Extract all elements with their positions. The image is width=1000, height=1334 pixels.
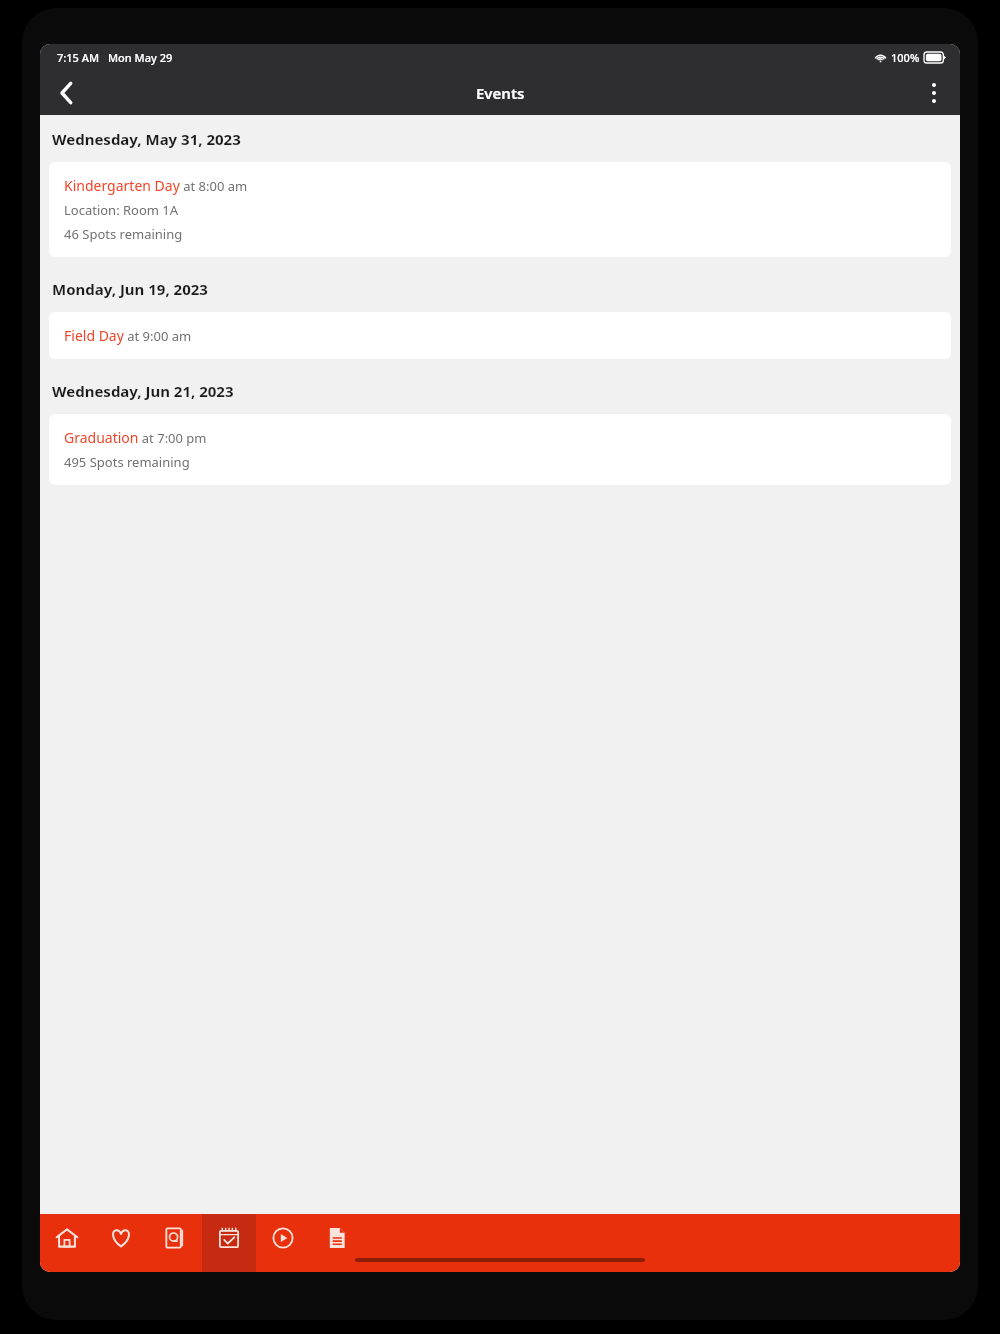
staticText: Monday, Jun 19, 2023 xyxy=(52,279,208,299)
button[interactable]: Events xyxy=(202,1214,256,1272)
staticText: Events xyxy=(476,83,525,103)
staticText: 100% xyxy=(891,50,920,65)
button[interactable]: Graduation at 7:00 pm xyxy=(49,414,951,485)
staticText: Mon May 29 xyxy=(108,50,173,65)
staticText: Kindergarten Day at 8:00 am xyxy=(64,176,248,195)
button[interactable]: Directory xyxy=(148,1214,202,1272)
staticText: Field Day at 9:00 am xyxy=(64,326,192,345)
button[interactable]: Field Day at 9:00 am xyxy=(49,312,951,359)
staticText: Wednesday, Jun 21, 2023 xyxy=(52,381,234,401)
button[interactable]: Back xyxy=(40,70,92,115)
staticText: 495 Spots remaining xyxy=(64,453,190,471)
staticText: Graduation at 7:00 pm xyxy=(64,428,207,447)
staticText: Location: Room 1A xyxy=(64,201,179,219)
button[interactable]: Media xyxy=(256,1214,310,1272)
staticText: 46 Spots remaining xyxy=(64,225,183,243)
button[interactable]: More options xyxy=(908,70,960,115)
staticText: Wednesday, May 31, 2023 xyxy=(52,129,241,149)
button[interactable]: Kindergarten Day at 8:00 am xyxy=(49,162,951,257)
button[interactable]: Favorites xyxy=(94,1214,148,1272)
button[interactable]: Documents xyxy=(310,1214,364,1272)
button[interactable]: Home xyxy=(40,1214,94,1272)
staticText: 7:15 AM xyxy=(57,50,100,65)
